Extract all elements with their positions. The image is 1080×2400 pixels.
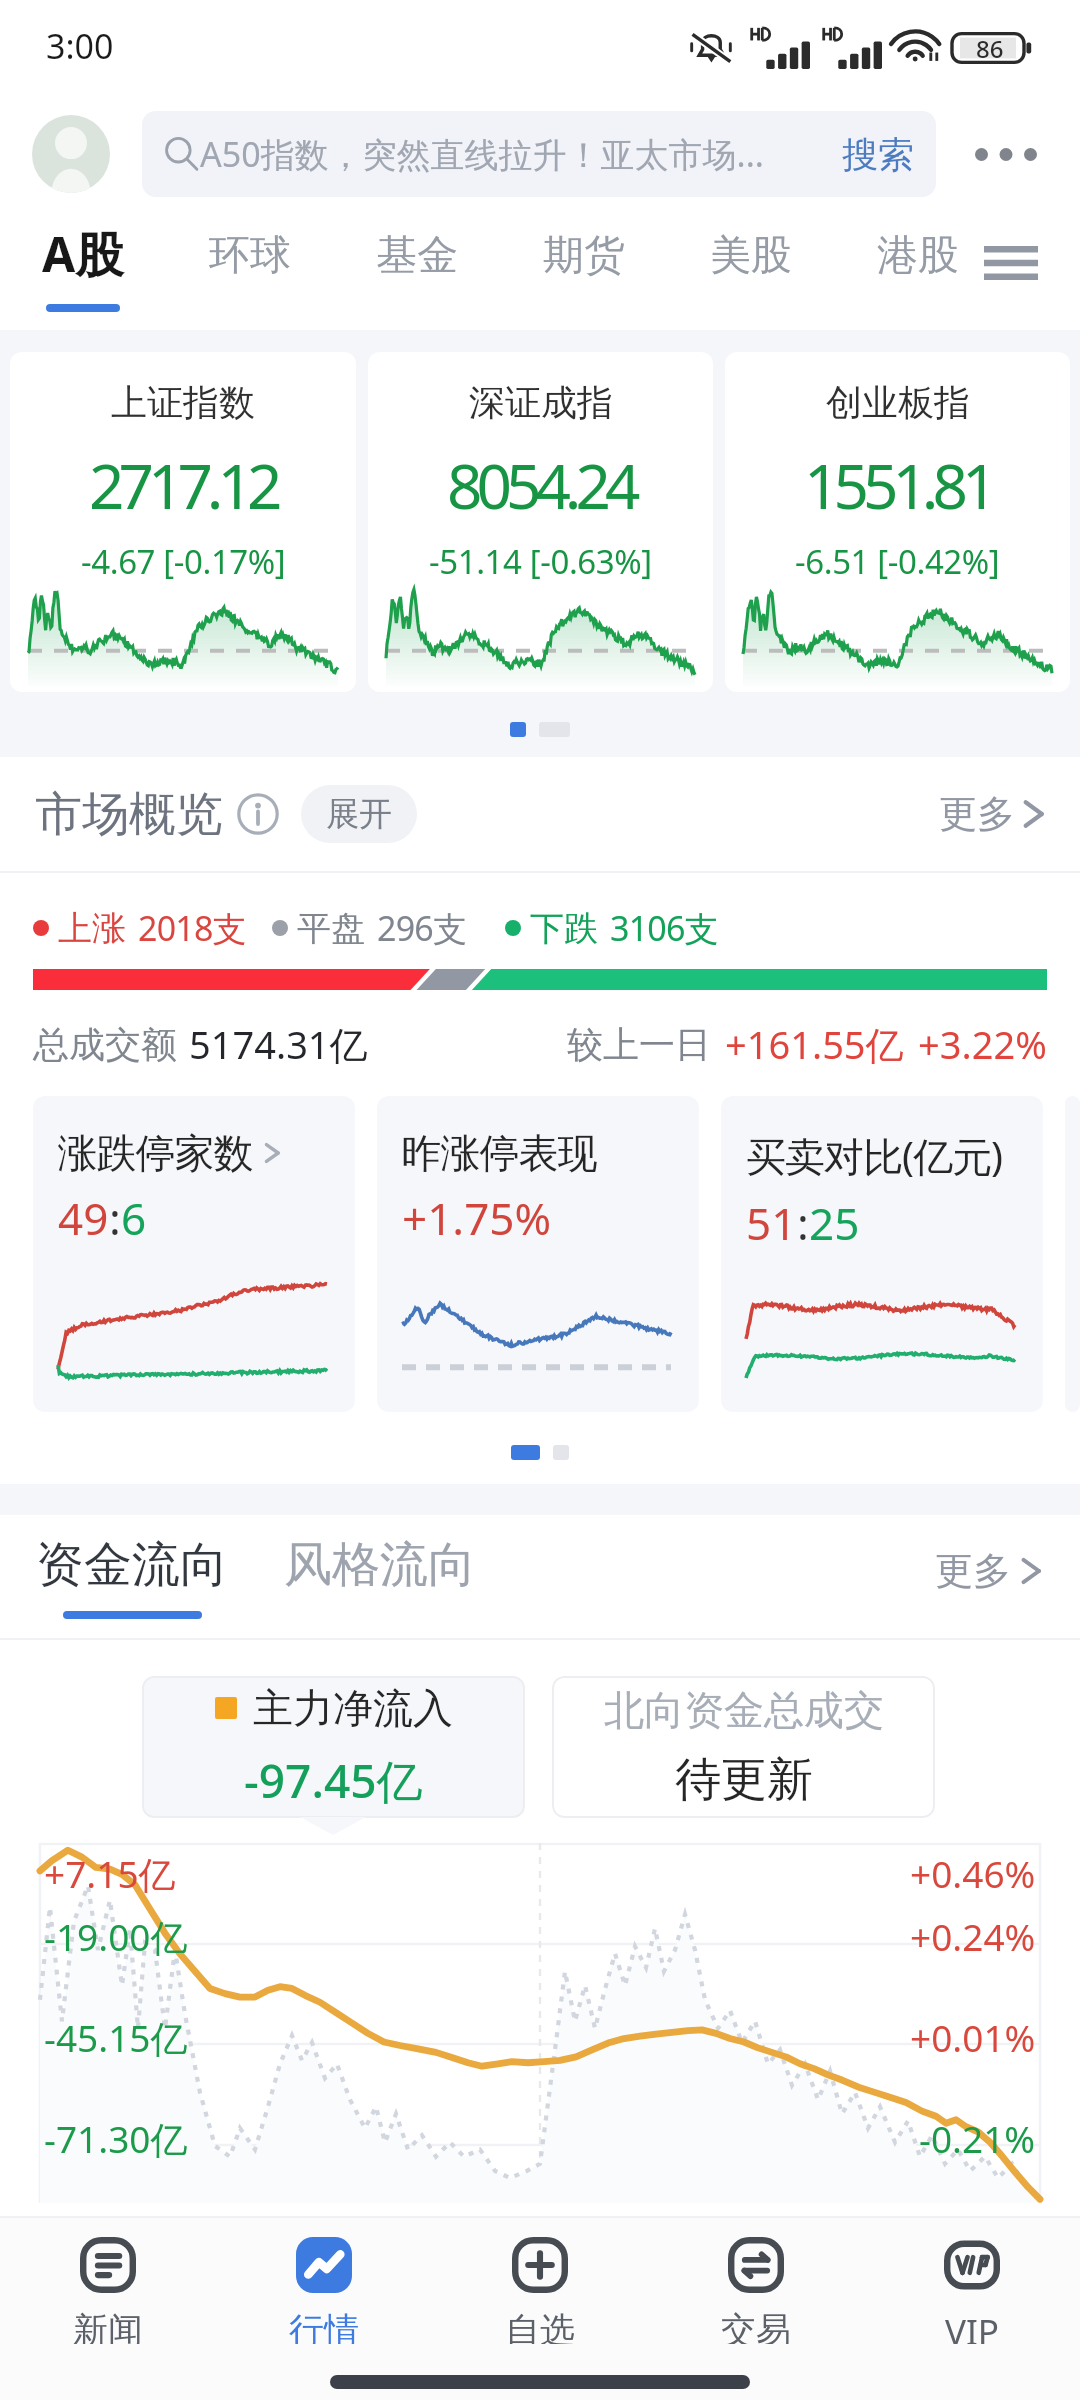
staticText: 创业板指 — [826, 380, 970, 425]
staticText: 更多 — [935, 1547, 1011, 1595]
button[interactable]: 主力净流入 — [142, 1676, 525, 1818]
staticText: 涨跌停家数 — [58, 1128, 253, 1178]
staticText: 3:00 — [46, 23, 114, 69]
staticText: 基金 — [376, 230, 458, 282]
button[interactable]: A股 — [42, 212, 124, 312]
staticText: 风格流向 — [284, 1535, 476, 1595]
staticText: 3106支 — [610, 905, 718, 951]
button[interactable]: VIP — [864, 2218, 1080, 2344]
staticText: 市场概览 — [35, 785, 223, 844]
staticText: 总成交额 — [33, 1022, 177, 1067]
staticText: +0.46% — [910, 1848, 1036, 1898]
staticText: +161.55亿 — [725, 1018, 904, 1070]
staticText: 25 — [809, 1193, 860, 1253]
button[interactable]: 更多 — [939, 790, 1047, 838]
button[interactable]: 深证成指 — [368, 352, 713, 692]
button[interactable]: 新闻 — [0, 2218, 216, 2344]
button[interactable]: 港股 — [877, 212, 959, 282]
staticText: 296支 — [377, 905, 467, 951]
button[interactable]: 行情 — [216, 2218, 432, 2344]
staticText: 主力净流入 — [253, 1683, 453, 1733]
staticText: 昨涨停表现 — [402, 1128, 597, 1178]
staticText: 8054.24 — [447, 443, 635, 527]
staticText: 1551.81 — [804, 443, 992, 527]
staticText: 86 — [976, 32, 1004, 65]
button[interactable]: 美股 — [710, 212, 792, 282]
staticText: 新闻 — [73, 2308, 143, 2344]
button[interactable]: More options — [968, 116, 1044, 192]
staticText: -51.14 [-0.63%] — [429, 539, 652, 584]
button[interactable]: 更多 — [935, 1547, 1044, 1595]
button[interactable]: Profile — [32, 115, 110, 193]
button[interactable]: 期货 — [543, 212, 625, 282]
staticText: +0.01% — [910, 2012, 1036, 2062]
staticText: 美股 — [710, 230, 792, 282]
button[interactable]: 交易 — [648, 2218, 864, 2344]
staticText: A股 — [42, 221, 124, 287]
button[interactable]: 自选 — [432, 2218, 648, 2344]
staticText: 更多 — [939, 790, 1015, 838]
staticText: VIP — [945, 2308, 1000, 2344]
button[interactable]: 北向资金总成交 — [552, 1676, 935, 1818]
staticText: 上证指数 — [111, 380, 255, 425]
staticText: : — [797, 1193, 809, 1253]
staticText: 交易 — [721, 2308, 791, 2344]
staticText: 51 — [746, 1193, 797, 1253]
staticText: +7.15亿 — [44, 1848, 176, 1899]
staticText: -71.30亿 — [44, 2113, 188, 2164]
staticText: 展开 — [326, 793, 392, 835]
button[interactable]: 展开 — [301, 785, 417, 843]
staticText: 深证成指 — [469, 380, 613, 425]
staticText: 行情 — [289, 2308, 359, 2344]
staticText: 2018支 — [138, 905, 246, 951]
staticText: 自选 — [505, 2308, 575, 2344]
staticText: 资金流向 — [36, 1535, 228, 1595]
staticText: A50指数，突然直线拉升！亚太市场... — [200, 131, 842, 177]
button[interactable]: 环球 — [209, 212, 291, 282]
staticText: -97.45亿 — [244, 1749, 423, 1812]
staticText: -0.21% — [919, 2113, 1036, 2163]
staticText: +0.24% — [910, 1911, 1036, 1961]
button[interactable]: 涨跌停家数 — [33, 1096, 355, 1412]
staticText: 北向资金总成交 — [604, 1685, 884, 1735]
button[interactable]: 买卖对比(亿元) — [721, 1096, 1043, 1412]
staticText: -45.15亿 — [44, 2012, 188, 2063]
staticText: 买卖对比(亿元) — [746, 1128, 1002, 1183]
staticText: +3.22% — [918, 1018, 1047, 1070]
staticText: 下跌 — [530, 907, 598, 950]
staticText: 5174.31亿 — [189, 1018, 368, 1070]
button[interactable]: A50指数，突然直线拉升！亚太市场... — [142, 111, 936, 197]
staticText: -19.00亿 — [44, 1911, 188, 1962]
staticText: 2717.12 — [89, 443, 277, 527]
staticText: -4.67 [-0.17%] — [81, 539, 286, 584]
staticText: 环球 — [209, 230, 291, 282]
staticText: 港股 — [877, 230, 959, 282]
button[interactable]: 创业板指 — [725, 352, 1070, 692]
staticText: 待更新 — [675, 1751, 813, 1809]
staticText: 搜索 — [842, 132, 914, 177]
staticText: 上涨 — [58, 907, 126, 950]
staticText: 期货 — [543, 230, 625, 282]
staticText: +1.75% — [402, 1188, 552, 1248]
button[interactable]: 基金 — [376, 212, 458, 282]
staticText: 平盘 — [297, 907, 365, 950]
button[interactable]: 上证指数 — [10, 352, 356, 692]
staticText: 6 — [121, 1188, 147, 1248]
button[interactable]: Menu — [976, 228, 1046, 298]
staticText: 较上一日 — [567, 1022, 711, 1067]
button[interactable]: 昨涨停表现 — [377, 1096, 699, 1412]
staticText: : — [109, 1188, 121, 1248]
staticText: -6.51 [-0.42%] — [795, 539, 1000, 584]
staticText: 49 — [58, 1188, 109, 1248]
button[interactable]: Info — [237, 793, 279, 835]
